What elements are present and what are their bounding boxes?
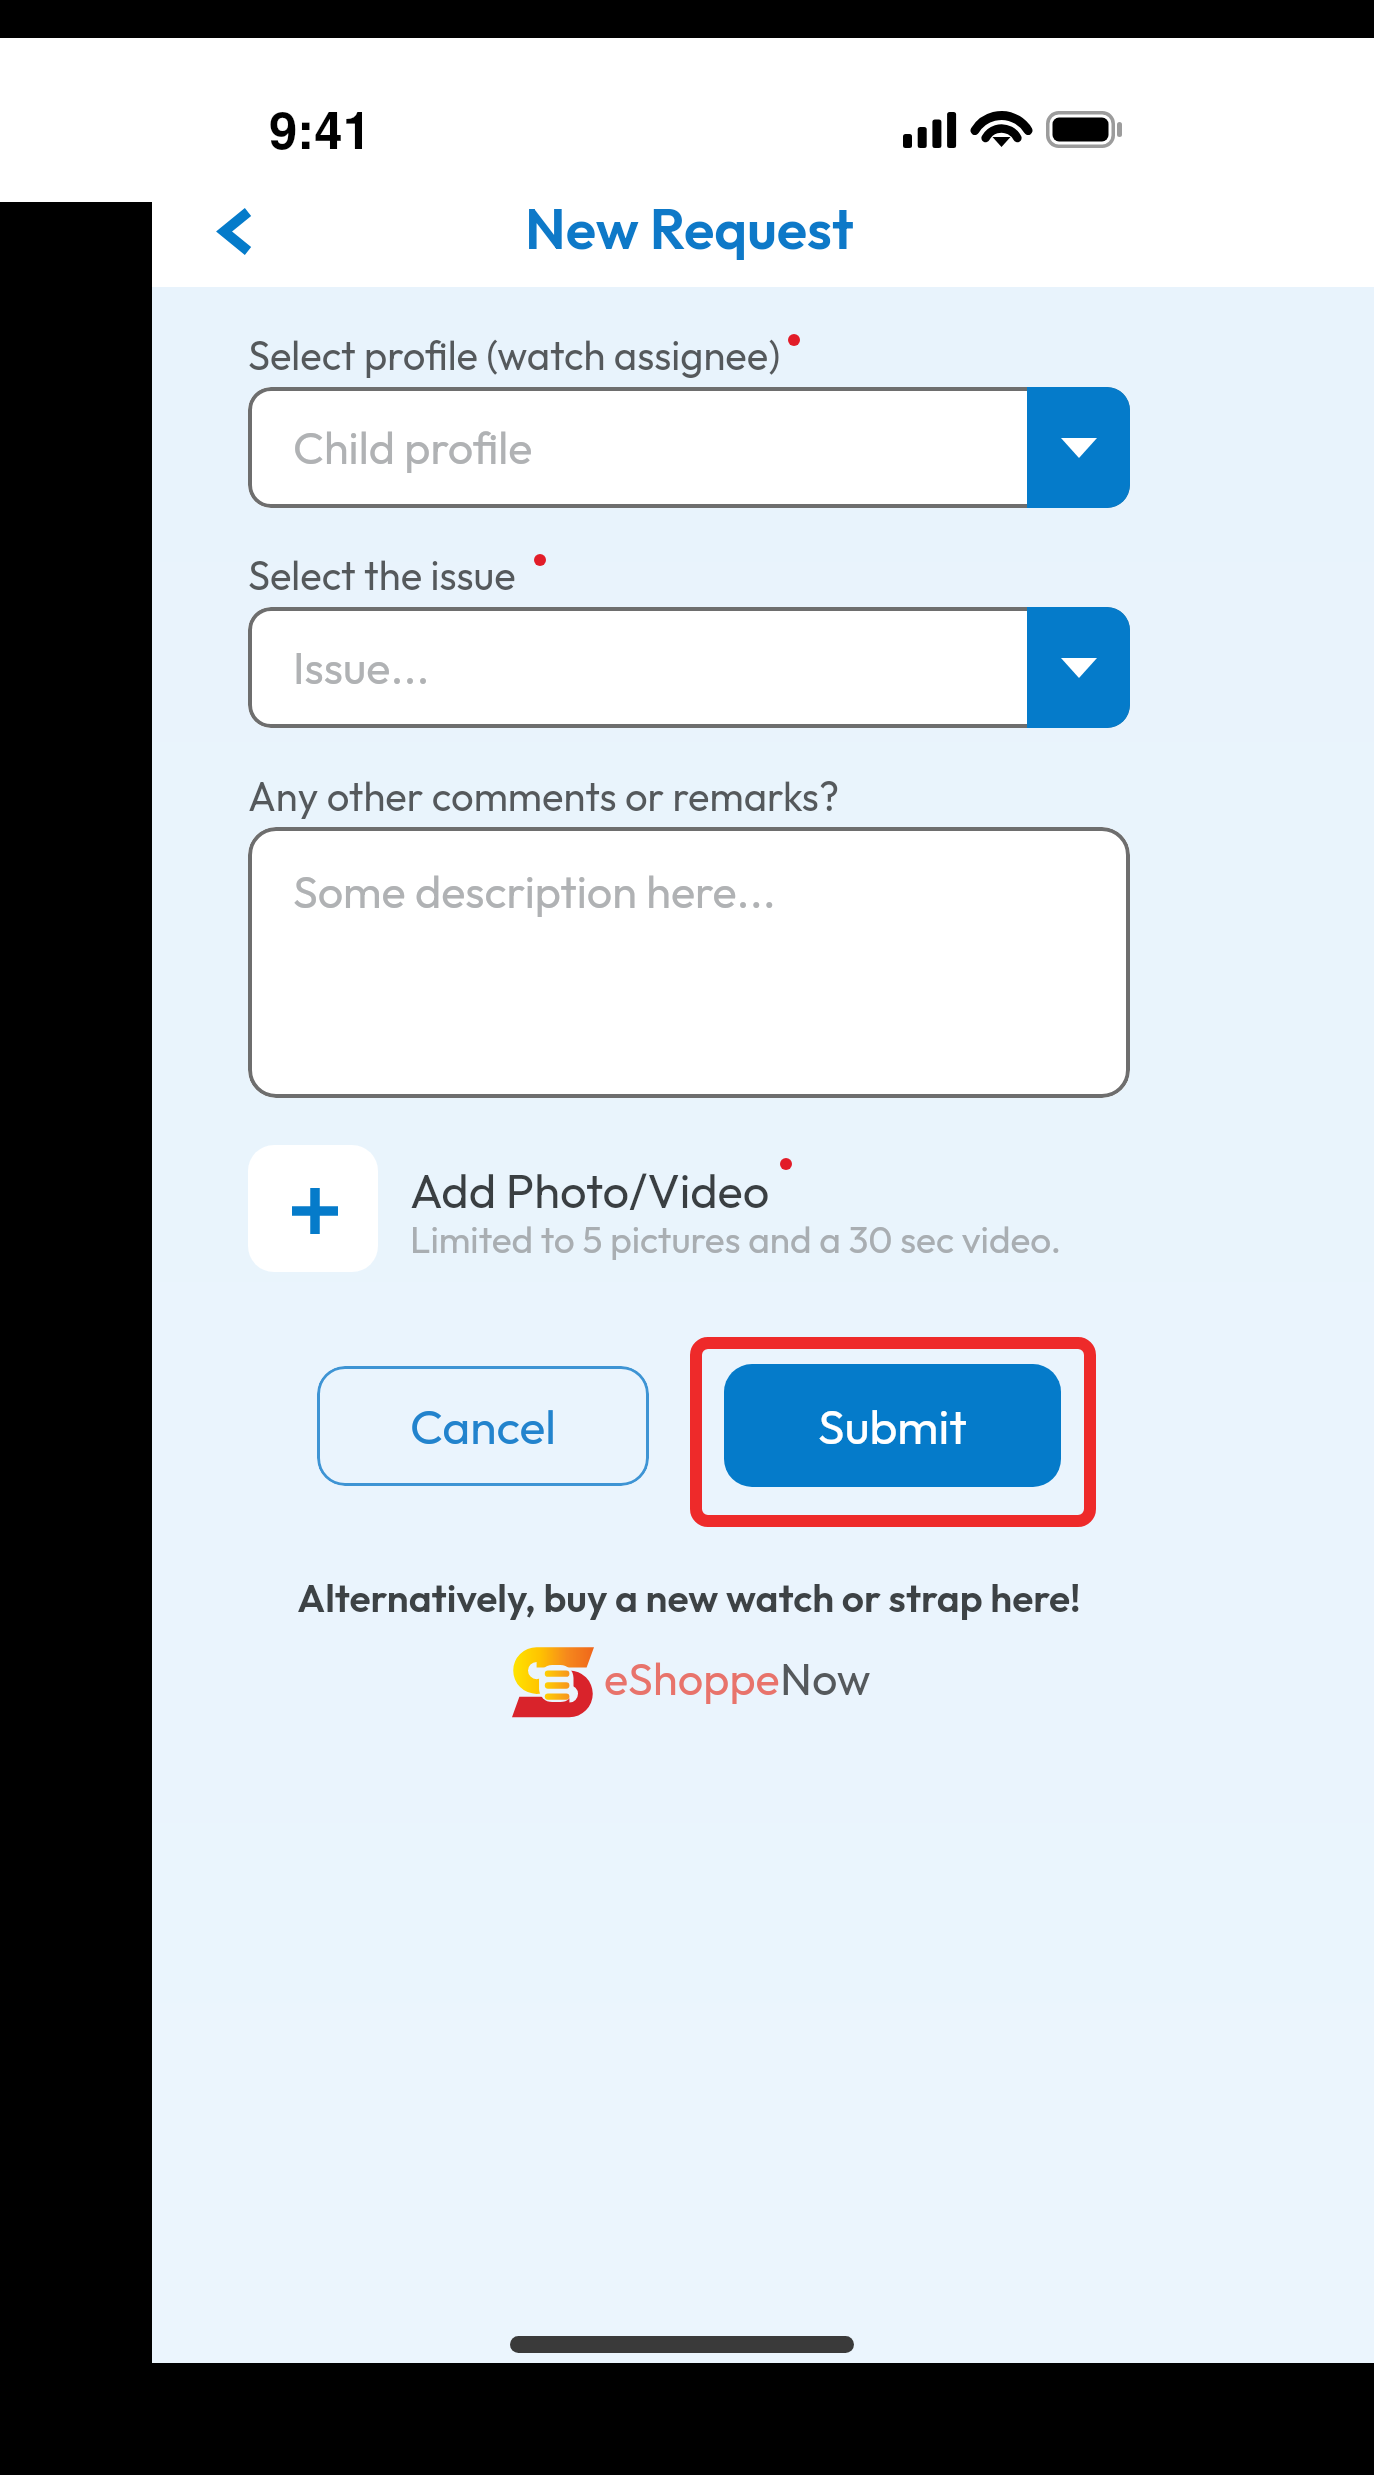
button[interactable]: Issue... xyxy=(248,607,1130,728)
button[interactable]: eShoppeNow xyxy=(512,1645,594,1719)
staticText: Now xyxy=(780,1650,871,1707)
button[interactable]: Cancel xyxy=(317,1366,649,1486)
staticText: Select the issue xyxy=(248,550,516,600)
staticText: Some description here... xyxy=(293,863,776,920)
button[interactable]: Some description here... xyxy=(248,827,1130,1098)
button[interactable]: Back xyxy=(181,190,291,273)
button[interactable]: eShoppe xyxy=(604,1650,871,1707)
staticText: eShoppe xyxy=(604,1650,780,1707)
staticText: Any other comments or remarks? xyxy=(248,771,840,821)
staticText: Issue... xyxy=(293,639,430,696)
staticText: 9:41 xyxy=(269,92,372,165)
staticText: Select profile (watch assignee) xyxy=(248,330,781,380)
staticText: Add Photo/Video xyxy=(410,1161,770,1220)
staticText: New Request xyxy=(525,193,854,264)
button[interactable]: Child profile xyxy=(248,387,1130,508)
staticText: Alternatively, buy a new watch or strap … xyxy=(297,1573,1081,1622)
staticText: Limited to 5 pictures and a 30 sec video… xyxy=(410,1216,1062,1263)
button[interactable]: Add Photo or Video xyxy=(248,1145,378,1272)
staticText: Child profile xyxy=(293,419,533,476)
staticText: Cancel xyxy=(410,1396,556,1456)
button[interactable]: Submit xyxy=(690,1337,1096,1527)
staticText: Submit xyxy=(818,1396,967,1456)
